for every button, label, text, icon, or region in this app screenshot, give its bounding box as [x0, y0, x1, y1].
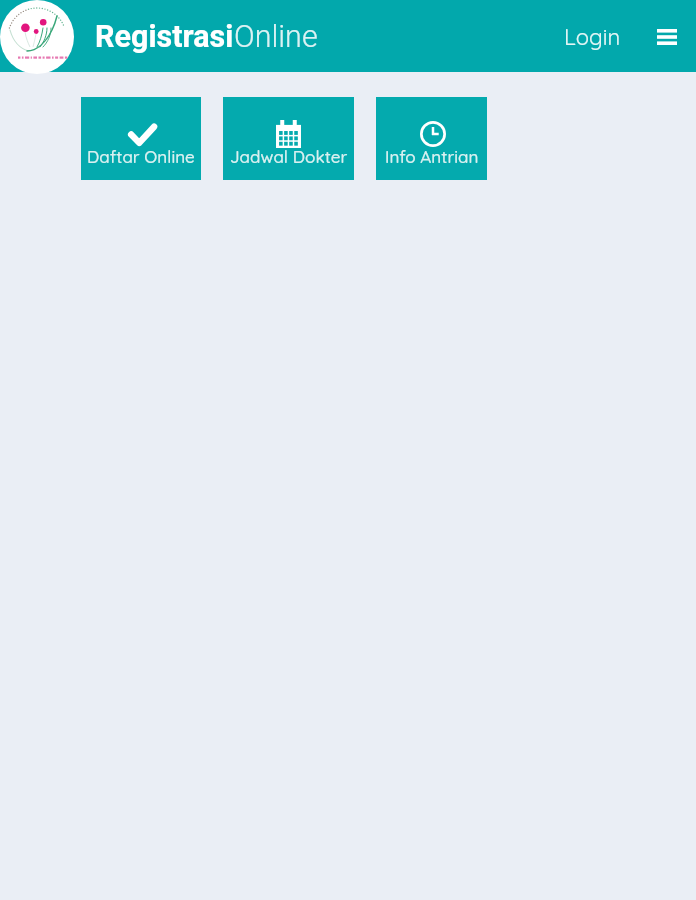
staticText: Online — [234, 19, 318, 55]
staticText: Daftar Online — [87, 146, 195, 167]
button[interactable]: Jadwal Dokter — [223, 97, 354, 180]
staticText: Registrasi — [95, 19, 234, 55]
button[interactable]: Login — [551, 12, 634, 62]
staticText: Login — [564, 23, 621, 51]
button[interactable]: Daftar Online — [81, 97, 201, 180]
button[interactable]: Info Antrian — [376, 97, 487, 180]
button[interactable]: Menu — [647, 17, 687, 57]
staticText: Info Antrian — [385, 146, 479, 167]
staticText: Jadwal Dokter — [230, 146, 348, 167]
